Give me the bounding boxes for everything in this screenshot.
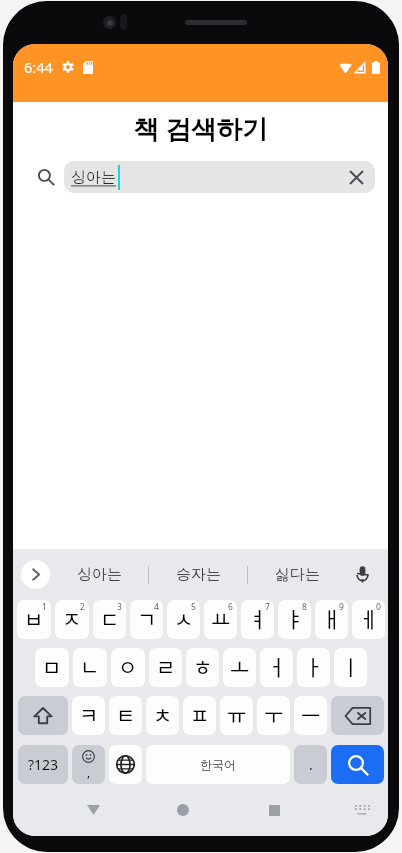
staticText: ㅏ bbox=[304, 651, 324, 681]
staticText: ㅐ bbox=[322, 603, 342, 633]
staticText: 2 bbox=[80, 601, 85, 613]
staticText: 한국어 bbox=[200, 757, 236, 772]
button[interactable]: Emoji bbox=[72, 745, 105, 784]
button[interactable]: ㅋ bbox=[72, 696, 105, 735]
staticText: 6 bbox=[228, 601, 233, 613]
staticText: ㄷ bbox=[100, 603, 120, 633]
button[interactable]: ㅏ bbox=[297, 648, 330, 687]
button[interactable]: ㅛ bbox=[204, 600, 237, 639]
staticText: , bbox=[87, 764, 91, 780]
button[interactable]: ㅅ bbox=[167, 600, 200, 639]
staticText: 싫다는 bbox=[275, 565, 320, 584]
button[interactable]: Change keyboard language bbox=[109, 745, 142, 784]
staticText: ㅎ bbox=[193, 651, 213, 681]
button[interactable]: ㅈ bbox=[55, 600, 89, 639]
staticText: ㅡ bbox=[301, 699, 321, 729]
staticText: ㅌ bbox=[116, 699, 136, 729]
staticText: ㅊ bbox=[153, 699, 173, 729]
staticText: 싱아는 bbox=[71, 168, 116, 187]
staticText: ㅠ bbox=[227, 699, 247, 729]
staticText: ㅣ bbox=[341, 651, 361, 681]
staticText: ㅍ bbox=[190, 699, 210, 729]
button[interactable]: ㅇ bbox=[111, 648, 145, 687]
button[interactable]: ㅕ bbox=[241, 600, 274, 639]
button[interactable]: More suggestions bbox=[21, 560, 50, 589]
button[interactable]: ㄷ bbox=[93, 600, 126, 639]
button[interactable]: ㅎ bbox=[186, 648, 219, 687]
button[interactable]: ㅍ bbox=[183, 696, 216, 735]
button[interactable]: 승자는 bbox=[149, 549, 247, 600]
button[interactable]: . bbox=[294, 745, 327, 784]
staticText: 1 bbox=[42, 601, 47, 613]
staticText: ㅕ bbox=[248, 603, 268, 633]
button[interactable]: ㄱ bbox=[130, 600, 163, 639]
button[interactable]: Home bbox=[165, 792, 201, 828]
staticText: ㅔ bbox=[359, 603, 379, 633]
staticText: . bbox=[309, 755, 313, 774]
staticText: ㅜ bbox=[264, 699, 284, 729]
button[interactable]: ㅁ bbox=[35, 648, 69, 687]
staticText: 0 bbox=[376, 601, 381, 613]
button[interactable]: ㅓ bbox=[260, 648, 293, 687]
button[interactable]: ㄴ bbox=[73, 648, 107, 687]
staticText: ㅛ bbox=[211, 603, 231, 633]
staticText: ㅗ bbox=[230, 651, 250, 681]
button[interactable]: 한국어 bbox=[146, 745, 290, 784]
button[interactable]: ㅐ bbox=[315, 600, 348, 639]
button[interactable]: ㅊ bbox=[146, 696, 179, 735]
staticText: 싱아는 bbox=[77, 565, 122, 584]
staticText: 5 bbox=[191, 601, 196, 613]
button[interactable]: Back bbox=[75, 792, 111, 828]
button[interactable]: 싱아는 bbox=[64, 161, 375, 193]
button[interactable]: ㄹ bbox=[149, 648, 182, 687]
button[interactable]: Recent apps bbox=[256, 792, 292, 828]
button[interactable]: ㅌ bbox=[109, 696, 142, 735]
staticText: 7 bbox=[265, 601, 270, 613]
button[interactable]: ㅂ bbox=[17, 600, 51, 639]
button[interactable]: ㅗ bbox=[223, 648, 256, 687]
button[interactable]: Backspace bbox=[331, 696, 384, 735]
staticText: 3 bbox=[117, 601, 122, 613]
button[interactable]: ㅣ bbox=[334, 648, 367, 687]
staticText: ㄴ bbox=[80, 651, 100, 681]
staticText: ㅈ bbox=[62, 603, 82, 633]
button[interactable]: ㅑ bbox=[278, 600, 311, 639]
staticText: ㅑ bbox=[285, 603, 305, 633]
staticText: ?123 bbox=[28, 755, 59, 774]
button[interactable]: Hide keyboard bbox=[347, 795, 377, 825]
button[interactable]: 싱아는 bbox=[51, 549, 148, 600]
button[interactable]: ㅠ bbox=[220, 696, 253, 735]
staticText: 9 bbox=[339, 601, 344, 613]
button[interactable]: Shift bbox=[18, 696, 68, 735]
staticText: ㄱ bbox=[137, 603, 157, 633]
staticText: 6:44 bbox=[24, 57, 53, 77]
staticText: ㅂ bbox=[24, 603, 44, 633]
button[interactable]: Search bbox=[38, 169, 54, 185]
staticText: 8 bbox=[302, 601, 307, 613]
button[interactable]: Voice input bbox=[346, 558, 379, 591]
button[interactable]: ㅡ bbox=[294, 696, 327, 735]
staticText: ㅋ bbox=[79, 699, 99, 729]
staticText: ㅇ bbox=[118, 651, 138, 681]
staticText: ㅓ bbox=[267, 651, 287, 681]
button[interactable]: 싫다는 bbox=[248, 549, 346, 600]
staticText: ㄹ bbox=[156, 651, 176, 681]
button[interactable]: Search bbox=[331, 745, 384, 784]
button[interactable]: Clear search bbox=[340, 161, 372, 193]
button[interactable]: ?123 bbox=[18, 745, 68, 784]
staticText: ㅅ bbox=[174, 603, 194, 633]
staticText: ㅁ bbox=[42, 651, 62, 681]
staticText: 승자는 bbox=[176, 565, 221, 584]
staticText: 책 검색하기 bbox=[133, 111, 268, 143]
staticText: 4 bbox=[154, 601, 159, 613]
button[interactable]: ㅜ bbox=[257, 696, 290, 735]
button[interactable]: ㅔ bbox=[352, 600, 385, 639]
